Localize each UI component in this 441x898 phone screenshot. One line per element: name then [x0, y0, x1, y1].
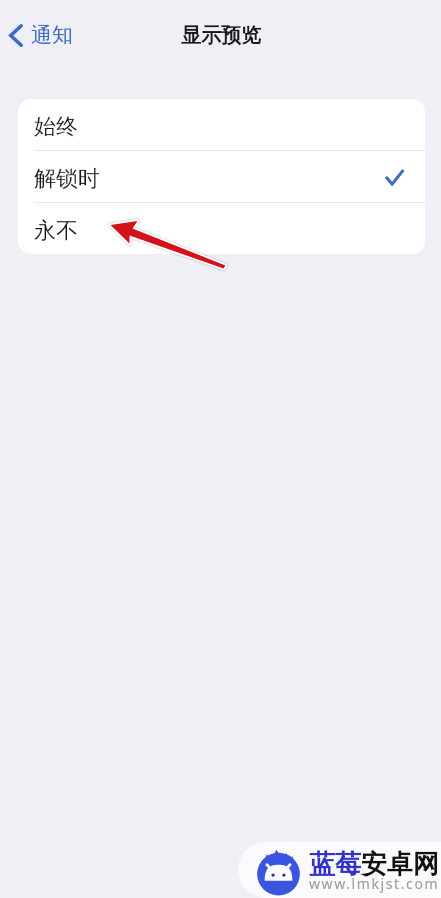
other: Selected — [386, 170, 403, 185]
button[interactable]: 蓝莓 — [238, 842, 441, 898]
staticText: www.lmkjst.com — [309, 874, 440, 893]
staticText: 显示预览 — [181, 23, 261, 48]
button[interactable]: 始终 — [18, 99, 425, 150]
button[interactable]: Back to 通知 — [3, 14, 79, 56]
staticText: 解锁时 — [34, 165, 100, 193]
button[interactable]: 解锁时 — [18, 151, 425, 202]
button[interactable]: 永不 — [18, 203, 425, 254]
staticText: 永不 — [34, 217, 78, 245]
staticText: 安卓网 — [361, 848, 439, 881]
staticText: 通知 — [31, 22, 73, 48]
staticText: 蓝莓 — [309, 848, 361, 881]
staticText: 始终 — [34, 113, 78, 141]
